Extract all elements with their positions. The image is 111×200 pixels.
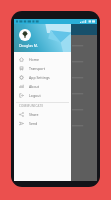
- staticText: Share: [29, 112, 39, 117]
- staticText: About: [29, 84, 39, 89]
- button[interactable]: Transport: [14, 64, 71, 73]
- button[interactable]: App Settings: [14, 73, 71, 82]
- button[interactable]: Send: [14, 119, 71, 128]
- button[interactable]: About: [14, 82, 71, 91]
- staticText: Logout: [29, 93, 41, 98]
- staticText: App Settings: [29, 75, 50, 80]
- button[interactable]: Home: [14, 55, 71, 64]
- staticText: Home: [29, 57, 39, 62]
- staticText: Transport: [29, 66, 45, 71]
- staticText: COMMUNICATE: [19, 104, 44, 108]
- button[interactable]: Share: [14, 110, 71, 119]
- button[interactable]: Logout: [14, 91, 71, 100]
- staticText: Douglas M.: [19, 43, 39, 48]
- staticText: Send: [29, 121, 38, 126]
